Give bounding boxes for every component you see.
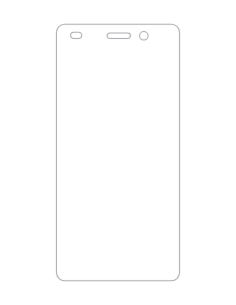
other: Tempered glass screen protector for smar… xyxy=(0,0,236,305)
